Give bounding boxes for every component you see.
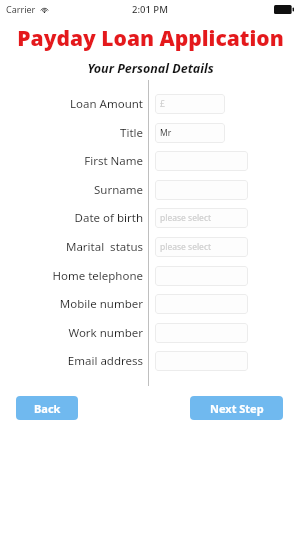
staticText: Title: [120, 125, 143, 141]
staticText: First Name: [84, 153, 143, 169]
button[interactable]: [155, 323, 248, 343]
button[interactable]: [155, 180, 248, 200]
staticText: Home telephone: [52, 268, 143, 284]
staticText: Surname: [94, 182, 143, 198]
staticText: Date of birth: [74, 210, 143, 226]
button[interactable]: Back: [16, 396, 78, 420]
button[interactable]: £: [155, 94, 225, 114]
button[interactable]: please select: [155, 237, 248, 257]
staticText: Mobile number: [59, 296, 143, 312]
staticText: 2:01 PM: [132, 3, 168, 16]
staticText: Next Step: [210, 401, 264, 416]
staticText: Email address: [67, 353, 143, 369]
button[interactable]: [155, 151, 248, 171]
button[interactable]: Next Step: [190, 396, 283, 420]
button[interactable]: please select: [155, 208, 248, 228]
button[interactable]: [155, 294, 248, 314]
staticText: Back: [34, 401, 61, 416]
staticText: Work number: [68, 325, 143, 341]
staticText: Marital status: [65, 239, 143, 255]
button[interactable]: Mr: [155, 123, 225, 143]
staticText: Mr: [160, 127, 172, 139]
staticText: Carrier: [6, 3, 36, 15]
staticText: Loan Amount: [70, 96, 143, 112]
staticText: please select: [160, 241, 212, 253]
staticText: Your Personal Details: [87, 60, 214, 77]
staticText: Payday Loan Application: [17, 24, 284, 53]
staticText: please select: [160, 212, 212, 224]
button[interactable]: [155, 266, 248, 286]
staticText: £: [160, 98, 165, 110]
button[interactable]: [155, 351, 248, 371]
